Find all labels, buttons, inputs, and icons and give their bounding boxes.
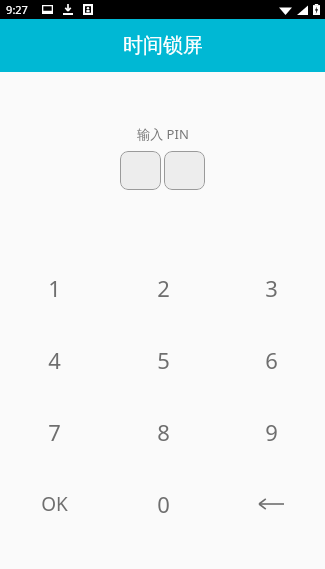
staticText: 5	[157, 345, 170, 375]
button[interactable]: 1	[0, 252, 109, 324]
staticText: 7	[48, 417, 61, 447]
staticText: 0	[157, 489, 170, 519]
staticText: 9	[265, 417, 278, 447]
staticText: 时间锁屏	[123, 33, 203, 58]
staticText: 输入 PIN	[137, 125, 189, 143]
button[interactable]: 4	[0, 324, 109, 396]
button[interactable]: 0	[109, 468, 217, 540]
staticText: 9:27	[6, 2, 28, 17]
button[interactable]: 9	[217, 396, 325, 468]
button[interactable]: OK	[0, 468, 109, 540]
button[interactable]: 2	[109, 252, 217, 324]
staticText: 6	[265, 345, 278, 375]
button[interactable]: 8	[109, 396, 217, 468]
staticText: 2	[157, 273, 170, 303]
button[interactable]: PIN digit	[120, 151, 161, 190]
staticText: 8	[157, 417, 170, 447]
button[interactable]: 3	[217, 252, 325, 324]
staticText: 1	[48, 273, 61, 303]
button[interactable]: 6	[217, 324, 325, 396]
staticText: 3	[265, 273, 278, 303]
button[interactable]: PIN digit	[164, 151, 205, 190]
button[interactable]: Backspace	[217, 468, 325, 540]
button[interactable]: 5	[109, 324, 217, 396]
staticText: 4	[48, 345, 61, 375]
button[interactable]: 7	[0, 396, 109, 468]
staticText: OK	[41, 491, 68, 517]
